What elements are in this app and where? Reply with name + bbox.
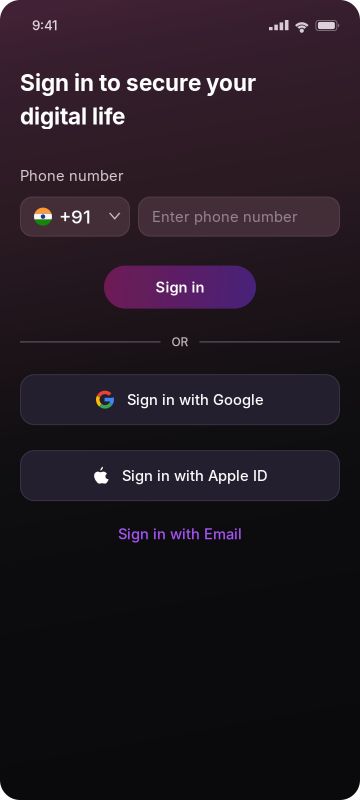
staticText: Sign in with Google [127, 391, 264, 408]
staticText: Sign in with Email [118, 525, 242, 543]
button[interactable]: Sign in [104, 266, 256, 309]
staticText: Enter phone number [152, 208, 298, 225]
staticText: Sign in [155, 278, 204, 296]
button[interactable]: Sign in with Google [20, 374, 340, 425]
staticText: Sign in with Apple ID [122, 467, 268, 484]
button[interactable]: Sign in with Apple ID [20, 450, 340, 501]
staticText: 9:41 [32, 17, 58, 33]
button[interactable]: Enter phone number [138, 197, 340, 237]
staticText: OR [171, 335, 188, 349]
staticText: Sign in to secure your [20, 69, 256, 96]
staticText: digital life [20, 102, 125, 130]
button[interactable]: Sign in with Email [104, 516, 256, 552]
staticText: +91 [59, 205, 91, 228]
button[interactable]: +91 [20, 197, 130, 237]
staticText: Phone number [20, 167, 124, 185]
